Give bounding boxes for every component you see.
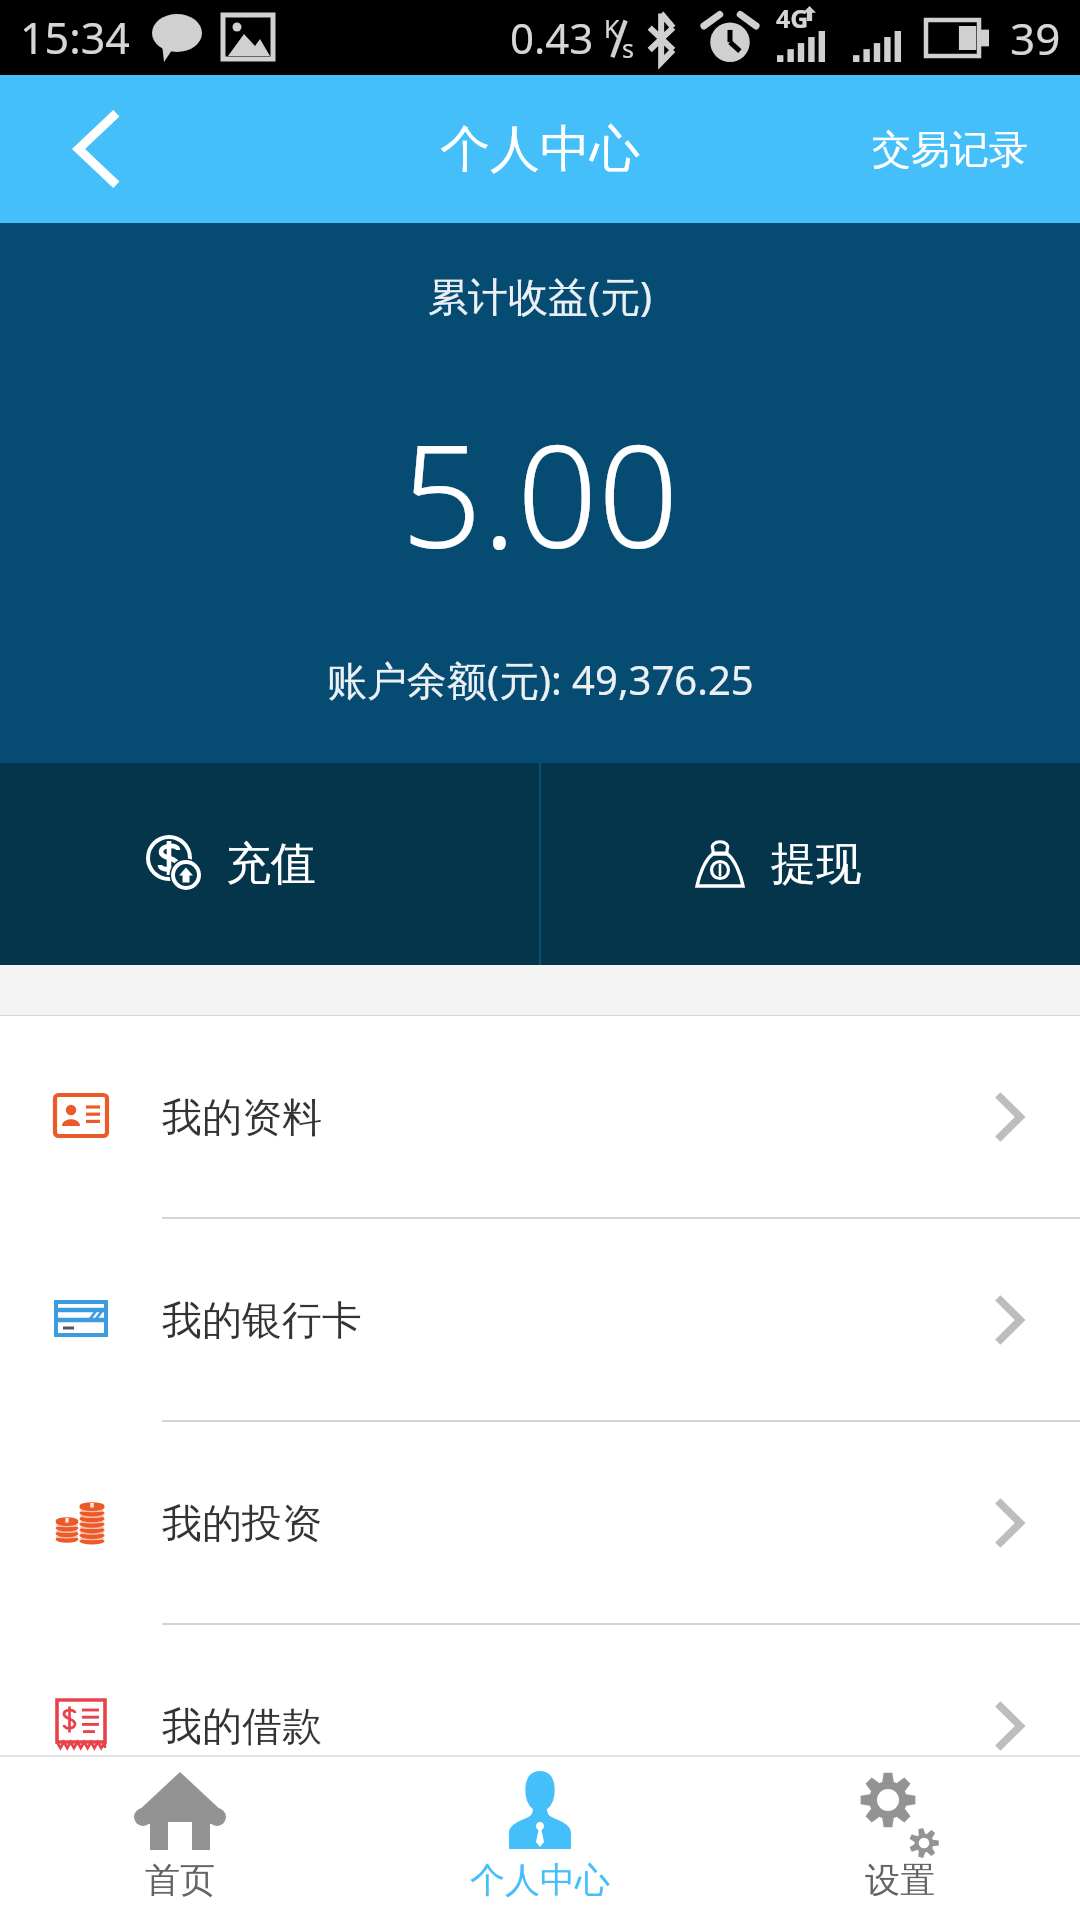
button[interactable]: 个人中心 — [360, 1757, 720, 1920]
staticText: 首页 — [145, 1858, 215, 1902]
staticText: 5.00 — [401, 396, 679, 589]
staticText: 设置 — [865, 1858, 935, 1902]
button[interactable]: 交易记录 — [832, 75, 1080, 223]
button[interactable]: 我的资料 — [0, 1016, 1080, 1219]
staticText: 39 — [1010, 8, 1061, 68]
staticText: 我的银行卡 — [162, 1295, 362, 1345]
button[interactable]: 提现 — [541, 763, 1080, 965]
staticText: 0.43 — [510, 9, 594, 66]
button[interactable]: 我的借款 — [0, 1625, 1080, 1826]
button[interactable]: 我的投资 — [0, 1422, 1080, 1625]
staticText: 个人中心 — [470, 1858, 610, 1902]
staticText: 账户余额(元): 49,376.25 — [327, 652, 754, 707]
staticText: s — [622, 31, 634, 65]
staticText: 充值 — [226, 836, 316, 893]
button[interactable]: Back — [0, 75, 160, 223]
staticText: K — [604, 11, 620, 45]
staticText: 4G — [776, 1, 809, 35]
staticText: 我的资料 — [162, 1092, 322, 1142]
staticText: 我的投资 — [162, 1498, 322, 1548]
staticText: 15:34 — [20, 8, 130, 67]
button[interactable]: 我的银行卡 — [0, 1219, 1080, 1422]
staticText: 个人中心 — [440, 118, 640, 181]
staticText: 累计收益(元) — [428, 268, 652, 323]
button[interactable]: 首页 — [0, 1757, 360, 1920]
staticText: 交易记录 — [872, 125, 1028, 174]
button[interactable]: 充值 — [0, 763, 539, 965]
staticText: 提现 — [771, 836, 861, 893]
staticText: 我的借款 — [162, 1701, 322, 1751]
button[interactable]: 设置 — [720, 1757, 1080, 1920]
